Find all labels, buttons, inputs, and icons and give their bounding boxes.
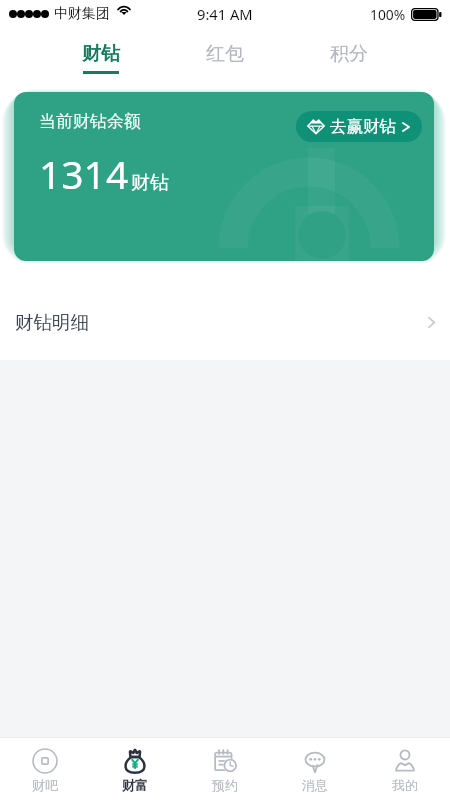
staticText: 中财集团 (54, 5, 110, 23)
button[interactable]: 积分 (287, 28, 411, 80)
button[interactable]: 财钻 (39, 28, 163, 80)
staticText: 财富 (122, 777, 148, 793)
staticText: 财钻 (131, 171, 169, 195)
button[interactable]: 财钻明细 (0, 285, 450, 360)
staticText: 1314 (39, 147, 129, 200)
button[interactable]: 红包 (163, 28, 287, 80)
button[interactable]: 财吧 (0, 738, 90, 800)
staticText: 财钻 (82, 42, 120, 66)
button[interactable]: 消息 (270, 738, 360, 800)
button[interactable]: 财富 (90, 738, 180, 800)
button[interactable]: 去赢财钻 (296, 111, 422, 142)
staticText: 财吧 (32, 777, 58, 793)
staticText: 当前财钻余额 (39, 111, 141, 132)
staticText: 去赢财钻 (330, 116, 396, 137)
button[interactable]: 预约 (180, 738, 270, 800)
staticText: 9:41 AM (197, 4, 253, 24)
staticText: 预约 (212, 777, 238, 793)
button[interactable]: 我的 (360, 738, 450, 800)
staticText: 我的 (392, 777, 418, 793)
staticText: 消息 (302, 777, 328, 793)
staticText: 100% (370, 5, 406, 24)
staticText: 红包 (206, 42, 244, 66)
staticText: 积分 (330, 42, 368, 66)
staticText: 财钻明细 (15, 311, 89, 334)
